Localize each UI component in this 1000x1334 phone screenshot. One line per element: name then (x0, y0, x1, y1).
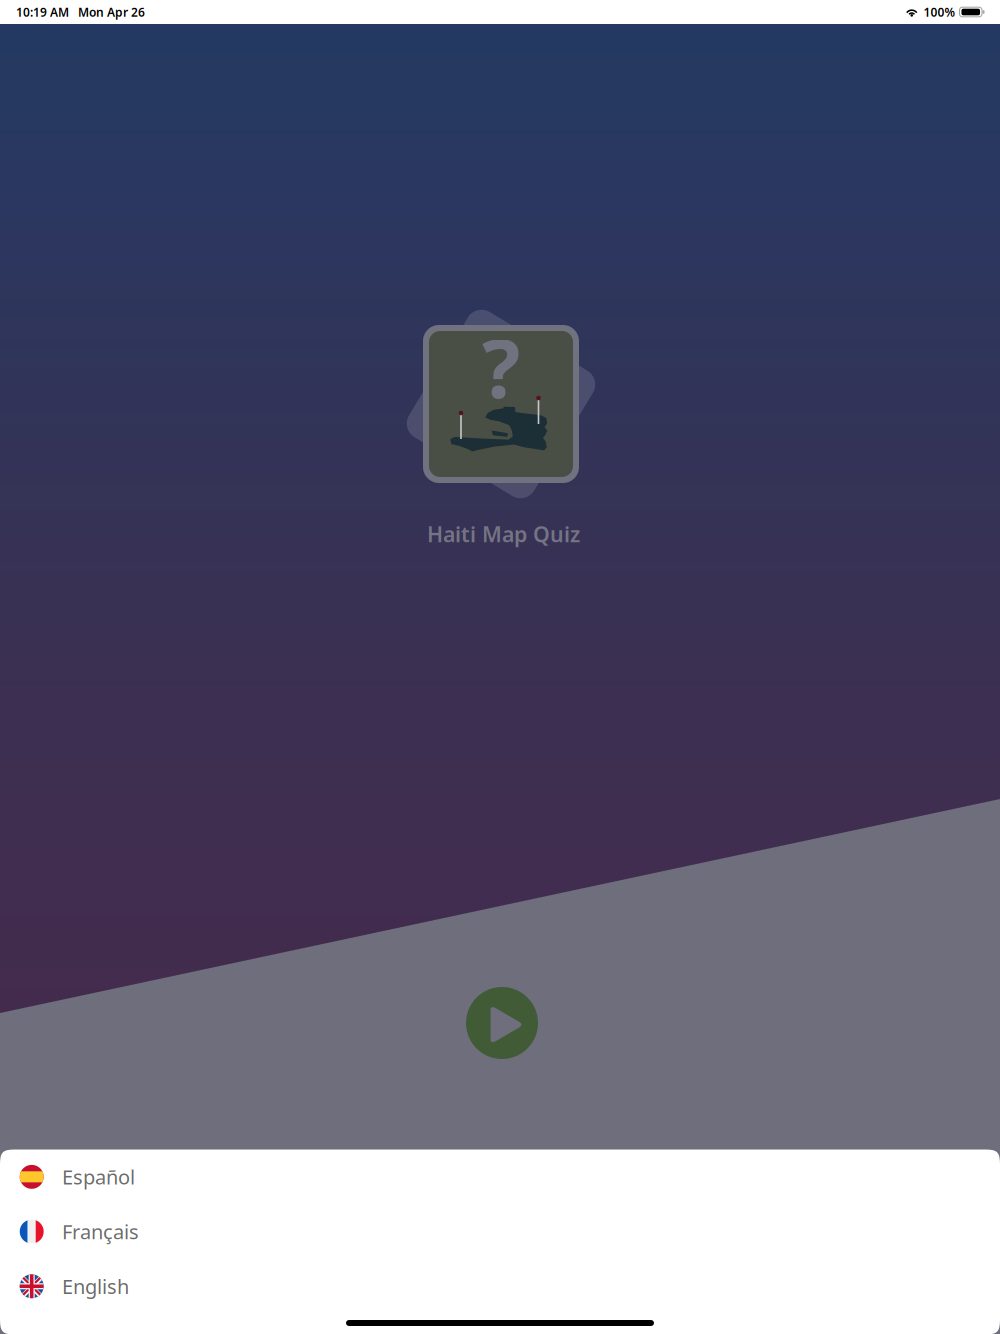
button[interactable]: Español (0, 1149, 1000, 1204)
staticText: ? (482, 314, 520, 420)
button[interactable]: Français (0, 1204, 1000, 1259)
button[interactable]: Play (466, 987, 538, 1059)
staticText: Français (62, 1218, 139, 1245)
staticText: 100% (923, 4, 955, 20)
staticText: Mon Apr 26 (78, 4, 145, 20)
staticText: English (62, 1273, 129, 1300)
staticText: Haiti Map Quiz (427, 520, 580, 548)
button[interactable]: English (0, 1259, 1000, 1314)
staticText: 10:19 AM (16, 4, 69, 20)
staticText: Español (62, 1164, 135, 1190)
